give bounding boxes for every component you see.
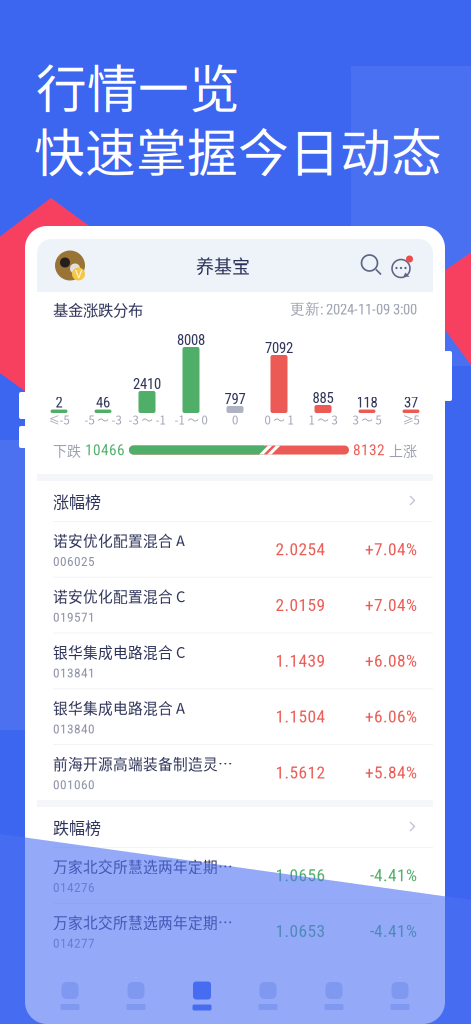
staticText: ≤-5 <box>48 411 69 428</box>
staticText: 46 <box>96 394 110 411</box>
staticText: 2.0254 <box>275 539 325 559</box>
staticText: 0 <box>232 411 238 428</box>
staticText: 8132 <box>349 441 389 459</box>
staticText: 银华集成电路混合 A <box>53 697 185 718</box>
button[interactable]: Tab 4 <box>235 970 301 1022</box>
staticText: 7092 <box>265 339 293 357</box>
staticText: +7.04% <box>365 595 417 615</box>
staticText: V <box>75 267 82 280</box>
staticText: 797 <box>224 390 245 408</box>
staticText: -3 ～ -1 <box>128 411 165 428</box>
staticText: +5.84% <box>365 762 417 783</box>
staticText: 上涨 <box>389 440 417 460</box>
staticText: 更新: 2024-11-09 3:00 <box>290 300 417 318</box>
staticText: -1 ～ 0 <box>174 411 207 428</box>
staticText: 8008 <box>177 331 205 349</box>
staticText: 2 <box>55 394 62 411</box>
staticText: 014276 <box>53 880 95 895</box>
button[interactable]: 银华集成电路混合 C <box>37 633 433 688</box>
staticText: 37 <box>404 394 418 411</box>
button[interactable]: 跌幅榜 <box>37 807 433 847</box>
button[interactable]: 前海开源高端装备制造灵活配... <box>37 745 433 800</box>
staticText: 1.0653 <box>275 921 325 941</box>
staticText: 诺安优化配置混合 A <box>53 529 185 551</box>
staticText: +6.08% <box>365 651 417 671</box>
staticText: -4.41% <box>370 921 417 941</box>
staticText: 1.1439 <box>275 651 325 671</box>
staticText: ≥5 <box>402 411 419 428</box>
staticText: -5 ～ -3 <box>84 411 121 428</box>
staticText: 013840 <box>53 721 95 737</box>
staticText: +6.06% <box>365 706 417 727</box>
button[interactable]: Tab 3 <box>169 970 235 1022</box>
staticText: 019571 <box>53 609 95 625</box>
staticText: 银华集成电路混合 C <box>53 641 185 662</box>
staticText: 001060 <box>53 777 95 792</box>
staticText: 3 ～ 5 <box>352 411 381 428</box>
button[interactable]: 万家北交所慧选两年定期开放... <box>37 848 433 903</box>
staticText: 跌幅榜 <box>53 815 101 839</box>
staticText: 2.0159 <box>275 595 325 615</box>
staticText: 006025 <box>53 554 95 569</box>
button[interactable]: Tab 6 <box>367 970 433 1022</box>
button[interactable]: 万家北交所慧选两年定期开放... <box>37 904 433 959</box>
staticText: 2410 <box>133 375 161 393</box>
staticText: 行情一览 <box>36 49 240 122</box>
staticText: 1 ～ 3 <box>308 411 337 428</box>
button[interactable]: 诺安优化配置混合 A <box>37 522 433 577</box>
button[interactable]: 涨幅榜 <box>37 481 433 521</box>
button[interactable]: Tab 1 <box>37 970 103 1022</box>
staticText: 快速掌握今日动态 <box>34 113 442 186</box>
staticText: 10466 <box>81 441 129 459</box>
button[interactable]: Tab 2 <box>103 970 169 1022</box>
staticText: 前海开源高端装备制造灵活配... <box>53 753 238 774</box>
staticText: 885 <box>312 389 333 407</box>
button[interactable]: 诺安优化配置混合 C <box>37 578 433 633</box>
staticText: 万家北交所慧选两年定期开放... <box>53 911 238 932</box>
staticText: 基金涨跌分布 <box>53 298 143 320</box>
staticText: 1.5612 <box>275 762 325 783</box>
button[interactable]: Search <box>357 239 387 292</box>
staticText: 0 ～ 1 <box>264 411 293 428</box>
staticText: 013841 <box>53 665 95 681</box>
staticText: 万家北交所慧选两年定期开放... <box>53 855 238 877</box>
staticText: 涨幅榜 <box>53 489 101 513</box>
staticText: 养基宝 <box>196 252 250 279</box>
staticText: 诺安优化配置混合 C <box>53 585 185 606</box>
staticText: -4.41% <box>370 865 417 885</box>
button[interactable]: Messages <box>387 239 419 292</box>
staticText: 014277 <box>53 935 95 951</box>
button[interactable]: Tab 5 <box>301 970 367 1022</box>
staticText: 1.1504 <box>275 706 325 727</box>
staticText: 下跌 <box>53 440 81 460</box>
button[interactable]: 银华集成电路混合 A <box>37 689 433 744</box>
staticText: 118 <box>356 394 377 411</box>
button[interactable]: Profile <box>51 239 89 292</box>
staticText: +7.04% <box>365 539 417 559</box>
staticText: 1.0656 <box>275 865 325 885</box>
